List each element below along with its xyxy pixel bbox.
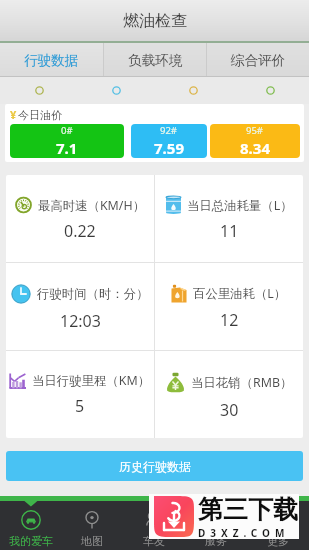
staticText: 行驶时间（时：分） [37, 286, 149, 302]
staticText: 92# [160, 124, 178, 137]
button[interactable]: 历史行驶数据 [6, 451, 303, 481]
other: 车友 [144, 510, 164, 530]
staticText: 11 [220, 220, 239, 242]
other: 地图 [82, 510, 102, 530]
button[interactable]: 当日花销（RMB） [155, 351, 303, 438]
staticText: 燃油检查 [123, 11, 187, 31]
staticText: 最高时速（KM/H） [38, 197, 146, 214]
staticText: 车友 [143, 534, 165, 548]
staticText: 0# [61, 124, 73, 137]
staticText: 第三下载 [198, 494, 298, 525]
button[interactable]: 综合评价 [207, 43, 309, 77]
other: 更多 [268, 510, 288, 530]
button[interactable]: 当日总油耗量（L） [155, 175, 303, 262]
button[interactable]: 服务 [185, 501, 247, 550]
button[interactable]: 行驶时间（时：分） [6, 263, 154, 350]
button[interactable]: 车友 [123, 501, 185, 550]
button[interactable]: 更多 [247, 501, 309, 550]
staticText: 0.22 [64, 220, 96, 242]
staticText: 7.1 [56, 138, 78, 158]
staticText: 8.34 [240, 138, 270, 158]
staticText: 当日总油耗量（L） [187, 197, 293, 214]
button[interactable]: 我的爱车 [0, 501, 61, 550]
staticText: D3XZ.COM [198, 526, 290, 539]
staticText: 30 [220, 399, 239, 421]
staticText: 历史行驶数据 [119, 459, 191, 474]
staticText: 95# [246, 124, 264, 137]
button[interactable]: 当日行驶里程（KM） [6, 351, 154, 438]
button[interactable]: 负载环境 [104, 43, 206, 77]
staticText: 行驶数据 [24, 52, 79, 69]
staticText: 我的爱车 [9, 534, 53, 548]
staticText: 当日行驶里程（KM） [32, 372, 151, 389]
staticText: 百公里油耗（L） [193, 285, 287, 302]
button[interactable]: 地图 [61, 501, 123, 550]
staticText: 7.59 [154, 138, 184, 158]
other: 服务 [206, 510, 226, 530]
staticText: 综合评价 [231, 52, 286, 69]
button[interactable]: 95# [210, 124, 300, 158]
button[interactable]: 0# [10, 124, 124, 158]
staticText: 更多 [267, 534, 289, 548]
button[interactable]: 92# [131, 124, 207, 158]
staticText: 5 [75, 395, 85, 417]
staticText: ¥ [10, 107, 17, 122]
other: 我的爱车 [21, 510, 41, 530]
button[interactable]: 百公里油耗（L） [155, 263, 303, 350]
staticText: 12:03 [60, 310, 101, 332]
staticText: 地图 [81, 534, 103, 548]
button[interactable]: 最高时速（KM/H） [6, 175, 154, 262]
staticText: 今日油价 [18, 108, 62, 122]
button[interactable]: 行驶数据 [0, 43, 103, 77]
staticText: 当日花销（RMB） [191, 374, 293, 391]
staticText: 负载环境 [128, 52, 183, 69]
staticText: 服务 [205, 534, 227, 548]
staticText: 12 [220, 309, 239, 331]
